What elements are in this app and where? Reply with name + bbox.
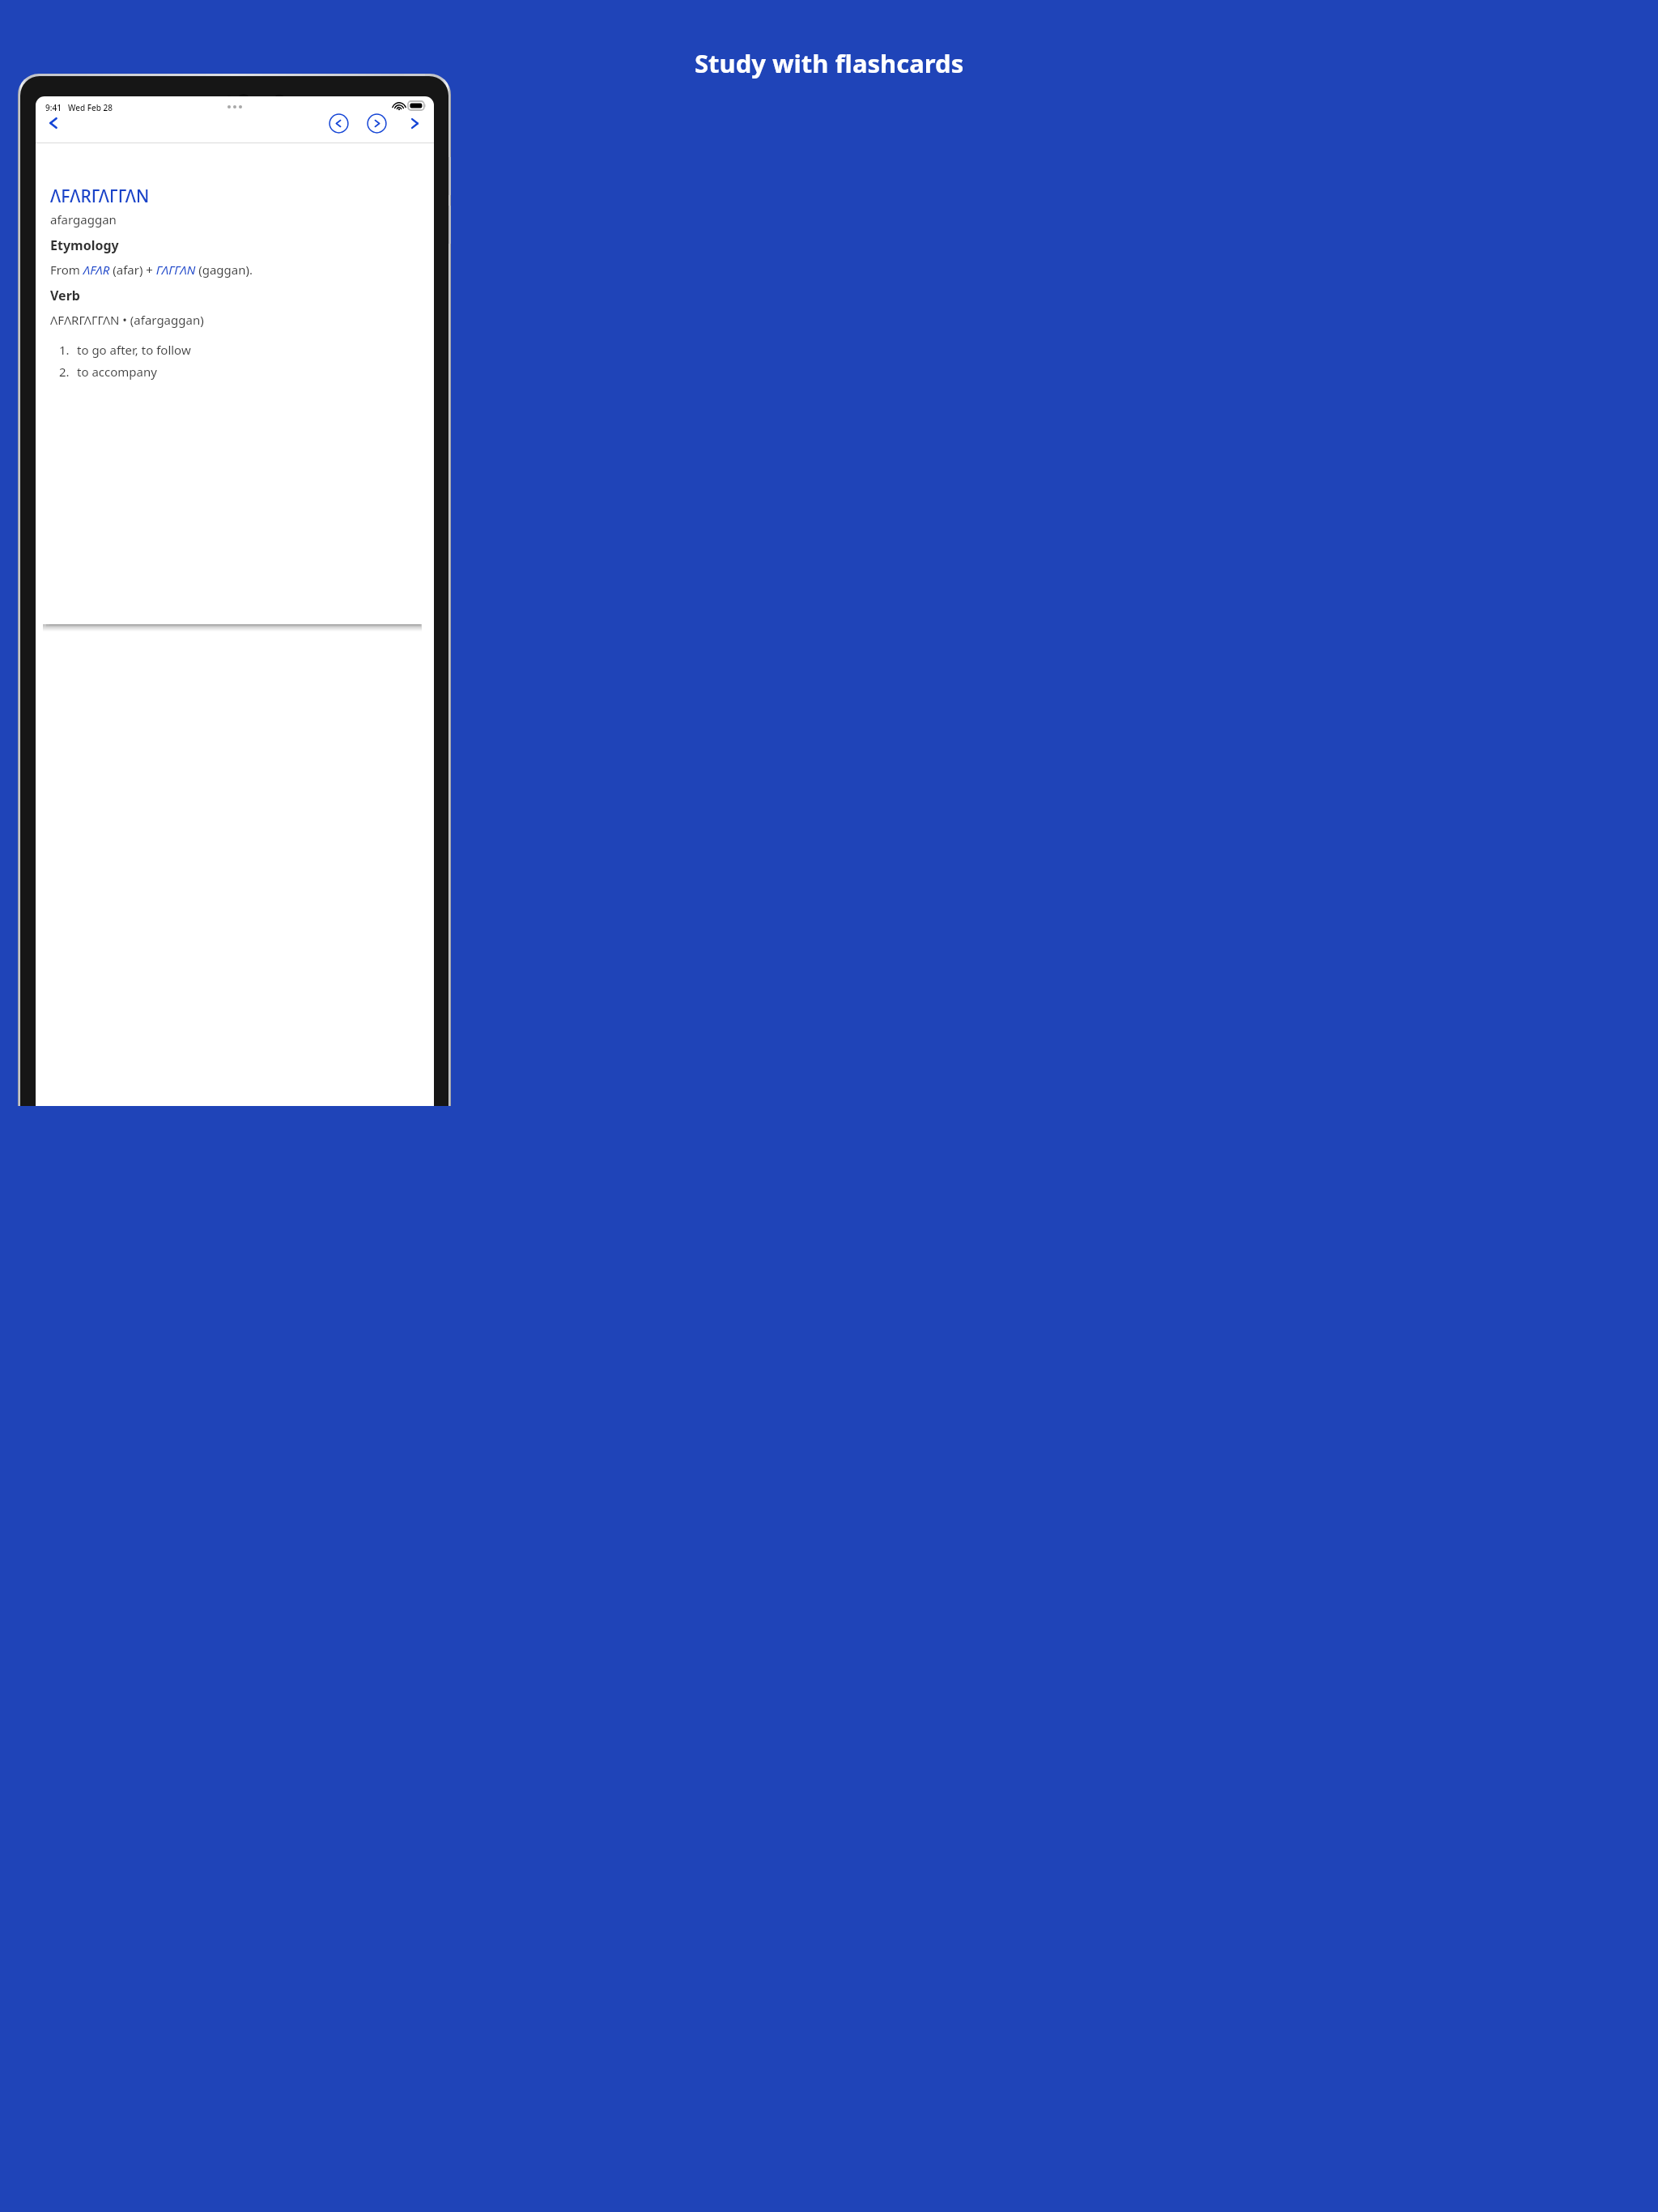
staticText: Verb — [50, 287, 80, 304]
button[interactable]: Forward — [398, 108, 429, 138]
staticText: to accompany — [77, 364, 157, 380]
staticText: 9:41 — [45, 102, 62, 113]
staticText: 2. — [59, 364, 70, 380]
button[interactable]: Previous card — [323, 108, 354, 138]
staticText: Wed Feb 28 — [68, 102, 113, 113]
button[interactable]: Back — [39, 108, 70, 138]
staticText: ΛFΛRΓΛΓΓΛN — [50, 185, 150, 208]
button[interactable]: ΛFΛRΓΛΓΓΛN — [43, 177, 422, 624]
staticText: Etymology — [50, 236, 119, 254]
staticText: Study with flashcards — [695, 46, 964, 80]
staticText: 1. — [59, 342, 70, 358]
staticText: afargaggan — [50, 211, 117, 228]
button[interactable]: Next card — [361, 108, 392, 138]
staticText: to go after, to follow — [77, 342, 191, 358]
staticText: ΛFΛRΓΛΓΓΛN • (afargaggan) — [50, 312, 204, 328]
staticText: From ΛFΛR (afar) + ΓΛΓΓΛN (gaggan). — [50, 262, 253, 278]
